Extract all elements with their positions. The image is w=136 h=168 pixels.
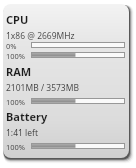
staticText: 1x86 @ 2669MHz [6,30,75,42]
button[interactable] [3,4,129,158]
staticText: 100% [6,97,26,107]
staticText: 0% [6,41,17,51]
staticText: CPU [6,12,29,27]
staticText: 1:41 left [6,127,39,139]
staticText: RAM [6,64,32,79]
staticText: 100% [6,51,26,61]
staticText: 2101MB / 3573MB [6,82,79,94]
staticText: Battery [6,109,48,124]
staticText: 100% [6,142,26,152]
